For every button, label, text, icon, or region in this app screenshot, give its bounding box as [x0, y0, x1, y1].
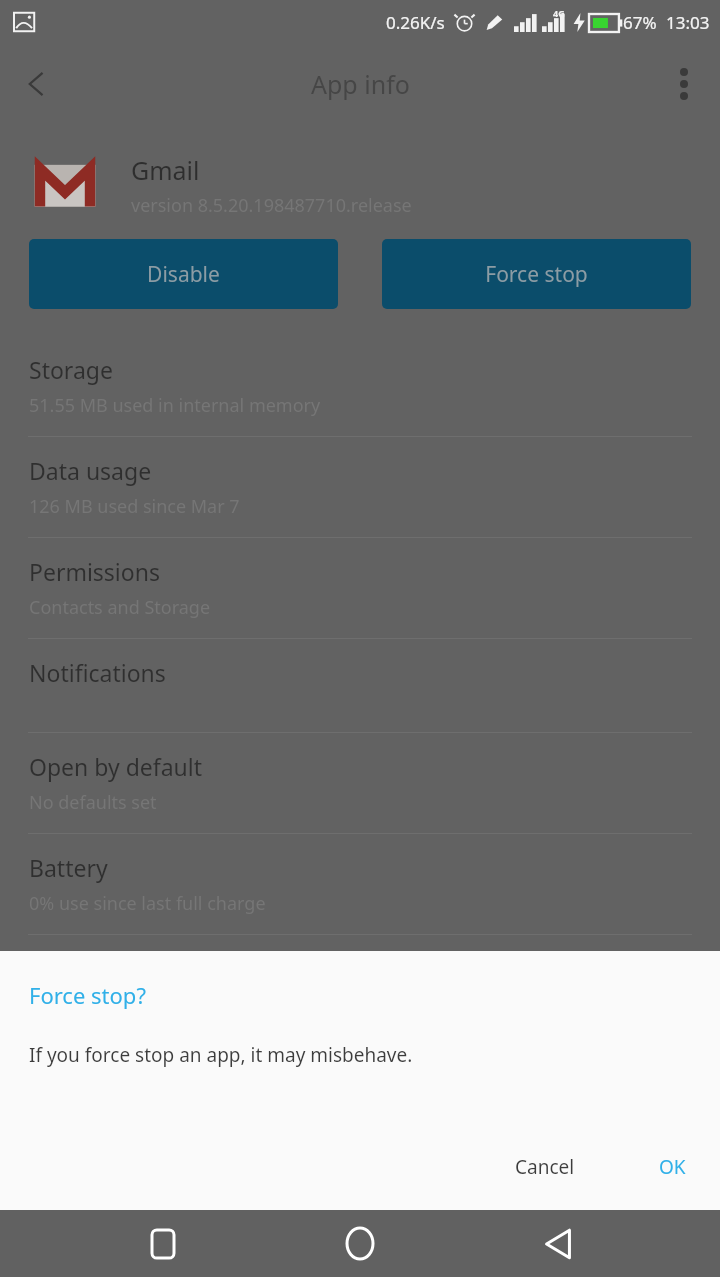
staticText: version 8.5.20.198487710.release: [131, 193, 412, 218]
button[interactable]: Cancel: [497, 1142, 593, 1192]
button[interactable]: Home: [325, 1210, 395, 1277]
staticText: Open by default: [29, 751, 203, 782]
staticText: 0% use since last full charge: [29, 891, 266, 916]
staticText: 1.8 MB avg memory used in last 3 hours: [29, 992, 368, 1017]
staticText: OK: [659, 1154, 686, 1180]
button[interactable]: More options: [648, 48, 720, 120]
staticText: Disable: [147, 260, 220, 289]
staticText: Gmail: [131, 153, 200, 187]
staticText: Force stop?: [29, 980, 146, 1010]
button[interactable]: Open by default: [0, 733, 720, 833]
staticText: Contacts and Storage: [29, 595, 211, 620]
staticText: Battery: [29, 852, 108, 883]
staticText: 0.26K/s: [386, 11, 445, 34]
staticText: 4G: [553, 7, 565, 19]
button[interactable]: Force stop: [382, 239, 691, 309]
staticText: Storage: [29, 354, 113, 385]
staticText: 13:03: [666, 11, 710, 34]
button[interactable]: OK: [641, 1142, 704, 1192]
staticText: Cancel: [515, 1154, 575, 1180]
button[interactable]: Back: [523, 1210, 593, 1277]
button[interactable]: Storage: [0, 336, 720, 436]
staticText: App info: [311, 67, 410, 101]
button[interactable]: Back: [0, 48, 72, 120]
button[interactable]: Disable: [29, 239, 338, 309]
staticText: No defaults set: [29, 790, 157, 815]
staticText: 67%: [623, 11, 657, 34]
staticText: If you force stop an app, it may misbeha…: [29, 1042, 413, 1068]
button[interactable]: Recent apps: [128, 1210, 198, 1277]
staticText: Notifications: [29, 657, 166, 688]
staticText: 51.55 MB used in internal memory: [29, 393, 321, 418]
staticText: Data usage: [29, 455, 152, 486]
staticText: Force stop: [485, 260, 588, 289]
staticText: Permissions: [29, 556, 160, 587]
button[interactable]: Data usage: [0, 437, 720, 537]
button[interactable]: Notifications: [0, 639, 720, 732]
staticText: 126 MB used since Mar 7: [29, 494, 240, 519]
button[interactable]: Memory: [0, 935, 720, 1035]
button[interactable]: Permissions: [0, 538, 720, 638]
button[interactable]: Battery: [0, 834, 720, 934]
